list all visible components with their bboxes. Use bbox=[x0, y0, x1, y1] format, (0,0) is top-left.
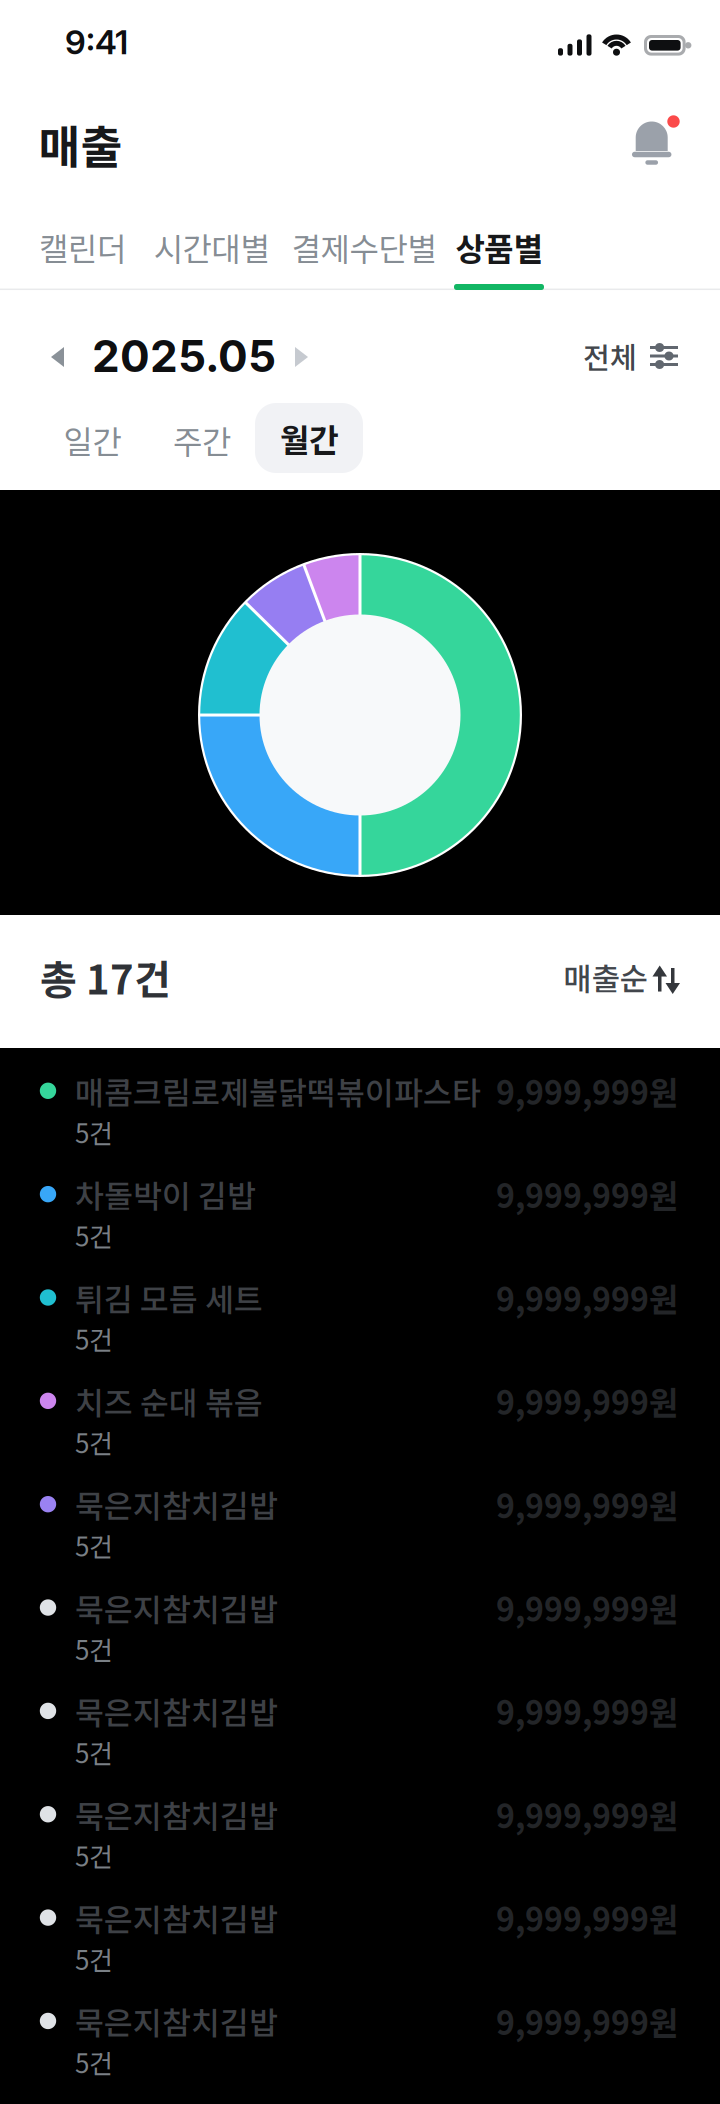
staticText: 9,999,999원 bbox=[496, 1688, 678, 1734]
staticText: 9,999,999원 bbox=[496, 1378, 678, 1424]
staticText: 9,999,999원 bbox=[496, 1894, 678, 1941]
button[interactable]: 튀김 모듬 세트 bbox=[0, 1253, 720, 1357]
staticText: 5건 bbox=[75, 1113, 113, 1151]
staticText: 시간대별 bbox=[153, 224, 269, 270]
staticText: 2025.05 bbox=[92, 329, 276, 383]
button[interactable]: 묵은지참치김밥 bbox=[0, 1563, 720, 1667]
button[interactable]: 치즈 순대 볶음 bbox=[0, 1357, 720, 1460]
button[interactable]: 매콤크림로제불닭떡볶이파스타 bbox=[0, 1047, 720, 1150]
staticText: 묵은지참치김밥 bbox=[75, 1998, 278, 2044]
staticText: 5건 bbox=[75, 1630, 113, 1667]
button[interactable]: 캘린더 bbox=[39, 224, 126, 270]
button[interactable]: 알림 bbox=[622, 110, 682, 170]
staticText: 5건 bbox=[75, 2043, 113, 2081]
staticText: 5건 bbox=[75, 1526, 113, 1564]
staticText: 5건 bbox=[75, 1423, 113, 1461]
staticText: 5건 bbox=[75, 1216, 113, 1254]
staticText: 9,999,999원 bbox=[496, 1068, 678, 1114]
button[interactable]: 시간대별 bbox=[153, 224, 269, 270]
staticText: 월간 bbox=[280, 415, 338, 461]
button[interactable]: 차돌박이 김밥 bbox=[0, 1150, 720, 1253]
button[interactable]: 이전 달 bbox=[42, 335, 86, 379]
button[interactable]: 다음 달 bbox=[273, 335, 317, 379]
button[interactable]: 묵은지참치김밥 bbox=[0, 1977, 720, 2080]
staticText: 묵은지참치김밥 bbox=[75, 1585, 278, 1630]
staticText: 치즈 순대 볶음 bbox=[75, 1378, 263, 1424]
staticText: 매출 bbox=[38, 111, 122, 177]
staticText: 차돌박이 김밥 bbox=[75, 1171, 256, 1217]
staticText: 5건 bbox=[75, 1940, 113, 1977]
button[interactable]: 묵은지참치김밥 bbox=[0, 1770, 720, 1873]
staticText: 매출순 bbox=[563, 955, 647, 999]
button[interactable]: 묵은지참치김밥 bbox=[0, 1667, 720, 1770]
staticText: 5건 bbox=[75, 1836, 113, 1874]
staticText: 9,999,999원 bbox=[496, 1274, 678, 1321]
staticText: 묵은지참치김밥 bbox=[75, 1895, 278, 1940]
staticText: 9,999,999원 bbox=[496, 1481, 678, 1527]
staticText: 총 17건 bbox=[40, 948, 171, 1006]
staticText: 매콤크림로제불닭떡볶이파스타 bbox=[75, 1068, 481, 1113]
button[interactable]: 매출순 정렬 bbox=[555, 955, 685, 999]
staticText: 전체 bbox=[583, 335, 637, 377]
staticText: 5건 bbox=[75, 1320, 113, 1357]
staticText: 9,999,999원 bbox=[496, 1791, 678, 1837]
staticText: 상품별 bbox=[455, 224, 542, 270]
staticText: 튀김 모듬 세트 bbox=[75, 1275, 263, 1320]
button[interactable]: 묵은지참치김밥 bbox=[0, 1460, 720, 1563]
staticText: 묵은지참치김밥 bbox=[75, 1688, 278, 1734]
button[interactable]: 전체 필터 bbox=[579, 334, 679, 378]
staticText: 결제수단별 bbox=[291, 224, 436, 270]
staticText: 9,999,999원 bbox=[496, 1171, 678, 1217]
staticText: 캘린더 bbox=[39, 224, 126, 270]
staticText: 9,999,999원 bbox=[496, 1584, 678, 1631]
staticText: 5건 bbox=[75, 1733, 113, 1771]
staticText: 묵은지참치김밥 bbox=[75, 1481, 278, 1527]
button[interactable]: 상품별 bbox=[455, 224, 542, 270]
button[interactable]: 월간 bbox=[255, 403, 363, 473]
button[interactable]: 묵은지참치김밥 bbox=[0, 1874, 720, 1977]
staticText: 9:41 bbox=[65, 22, 128, 62]
staticText: 9,999,999원 bbox=[496, 1998, 678, 2044]
staticText: 주간 bbox=[173, 417, 231, 463]
staticText: 일간 bbox=[63, 417, 121, 463]
staticText: 묵은지참치김밥 bbox=[75, 1792, 278, 1837]
button[interactable]: 결제수단별 bbox=[291, 224, 436, 270]
button[interactable]: 일간 bbox=[63, 417, 121, 463]
button[interactable]: 주간 bbox=[173, 417, 231, 463]
